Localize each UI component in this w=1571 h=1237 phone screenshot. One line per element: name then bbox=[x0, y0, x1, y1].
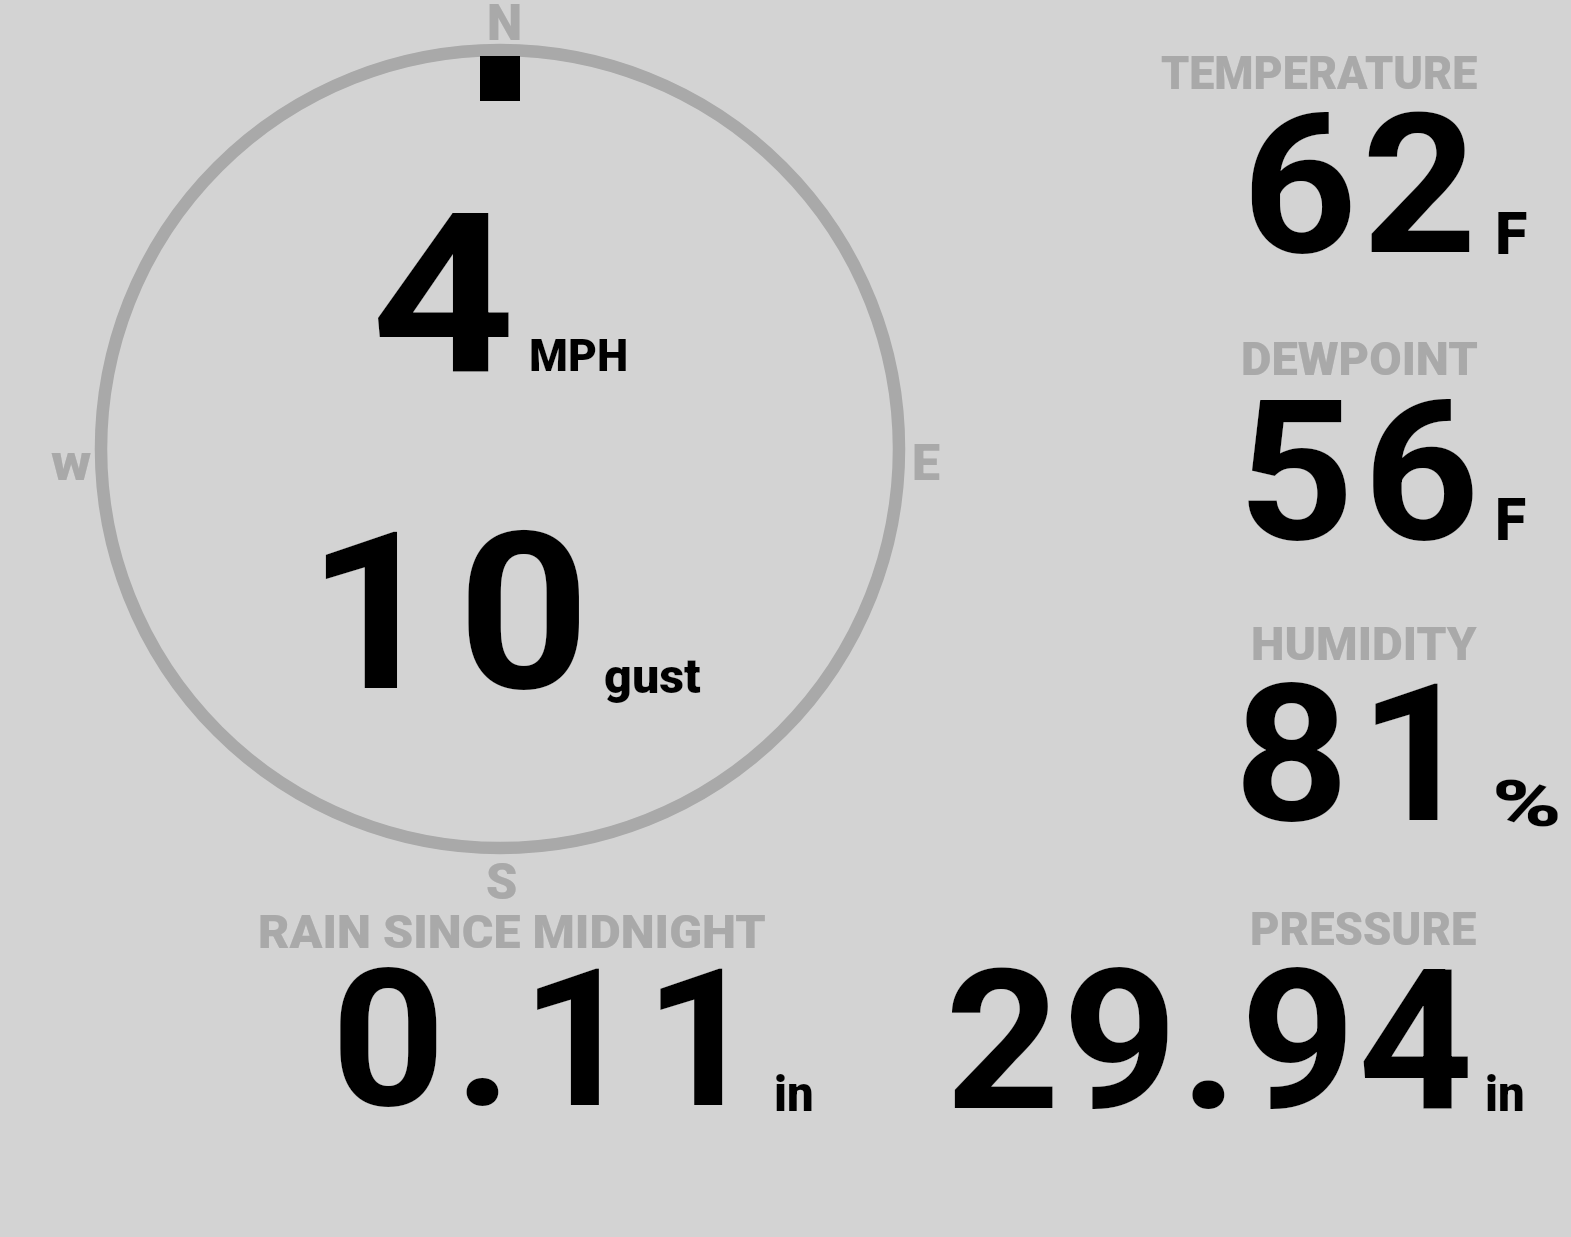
button[interactable]: Pressure 29.94 inches bbox=[900, 895, 1540, 1125]
staticText: 56 bbox=[1238, 358, 1489, 587]
staticText: 81 bbox=[1234, 643, 1485, 867]
button[interactable]: Wind 4 miles per hour, gusting 10, from … bbox=[95, 45, 905, 855]
staticText: 10 bbox=[307, 485, 609, 742]
button[interactable]: Temperature 62 degrees Fahrenheit bbox=[1150, 40, 1571, 310]
staticText: 4 bbox=[371, 165, 515, 426]
staticText: N bbox=[487, 0, 523, 53]
staticText: PRESSURE bbox=[1250, 901, 1477, 956]
staticText: F bbox=[1495, 485, 1527, 554]
staticText: 62 bbox=[1242, 71, 1482, 300]
staticText: E bbox=[912, 434, 940, 493]
button[interactable]: Dew point 56 degrees Fahrenheit bbox=[1150, 325, 1571, 595]
button[interactable]: Rain since midnight 0.11 inches bbox=[240, 895, 840, 1125]
staticText: RAIN SINCE MIDNIGHT bbox=[258, 905, 766, 959]
staticText: w bbox=[51, 434, 92, 493]
staticText: F bbox=[1495, 199, 1528, 268]
staticText: gust bbox=[604, 648, 701, 704]
staticText: in bbox=[1485, 1065, 1525, 1124]
button[interactable]: Humidity 81 percent bbox=[1150, 610, 1571, 880]
staticText: % bbox=[1492, 767, 1562, 842]
staticText: HUMIDITY bbox=[1251, 617, 1477, 671]
staticText: MPH bbox=[529, 329, 629, 382]
staticText: 0.11 bbox=[331, 927, 768, 1152]
staticText: in bbox=[774, 1065, 814, 1124]
staticText: DEWPOINT bbox=[1241, 332, 1478, 386]
staticText: S bbox=[486, 853, 518, 912]
staticText: TEMPERATURE bbox=[1161, 46, 1478, 100]
staticText: 29.94 bbox=[945, 928, 1476, 1155]
